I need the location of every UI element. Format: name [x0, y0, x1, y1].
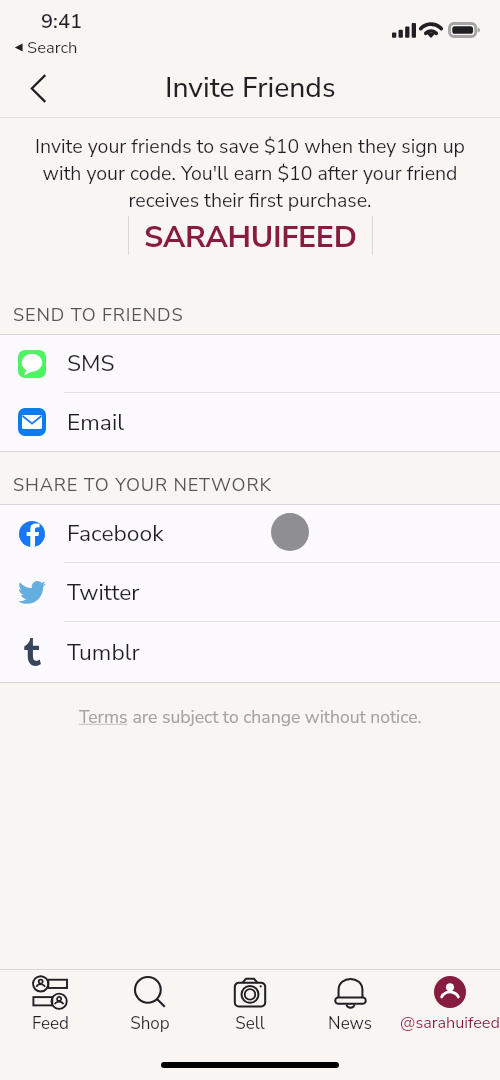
staticText: are subject to change without notice. [128, 705, 422, 729]
staticText: Invite your friends to save $10 when the… [24, 133, 476, 214]
staticText: SMS [67, 348, 115, 379]
button[interactable]: Terms [79, 705, 128, 729]
button[interactable]: Twitter [0, 563, 500, 621]
button[interactable]: SMS [0, 335, 500, 392]
staticText: Twitter [67, 577, 140, 608]
button[interactable]: Sell [200, 0, 300, 1080]
staticText: Sell [235, 1012, 265, 1035]
staticText: SARAHUIFEED [144, 216, 357, 255]
staticText: Facebook [67, 518, 164, 549]
button[interactable]: Back [15, 66, 60, 111]
button[interactable]: News [300, 0, 400, 1080]
button[interactable]: Tumblr [0, 622, 500, 682]
staticText: Email [67, 407, 124, 438]
staticText: SHARE TO YOUR NETWORK [13, 473, 272, 498]
staticText: Feed [32, 1012, 69, 1035]
staticText: SEND TO FRIENDS [13, 303, 184, 328]
button[interactable]: @sarahuifeed [400, 0, 500, 1080]
button[interactable]: SARAHUIFEED [128, 216, 373, 255]
staticText: News [328, 1012, 372, 1035]
staticText: Shop [130, 1012, 170, 1035]
staticText: Tumblr [67, 637, 140, 668]
button[interactable]: Email [0, 393, 500, 451]
staticText: @sarahuifeed [400, 1012, 500, 1034]
button[interactable]: Shop [100, 0, 200, 1080]
staticText: Invite Friends [165, 68, 336, 106]
button[interactable]: Feed [0, 0, 100, 1080]
staticText: Search [27, 36, 78, 59]
button[interactable]: Facebook [0, 505, 500, 562]
staticText: 9:41 [41, 8, 83, 36]
